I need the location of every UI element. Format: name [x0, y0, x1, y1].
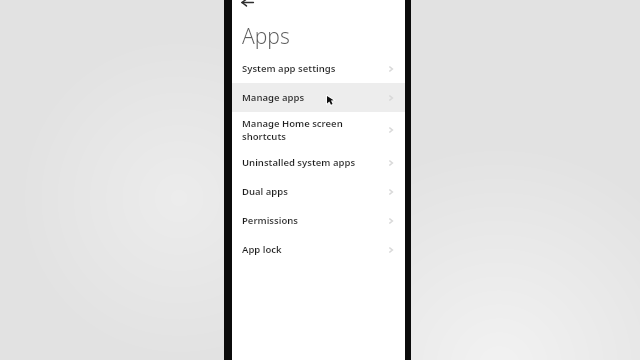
button[interactable]: Uninstalled system apps [232, 148, 405, 177]
staticText: System app settings [242, 62, 336, 75]
staticText: Dual apps [242, 185, 288, 198]
staticText: Apps [242, 22, 290, 51]
staticText: Manage Home screen [242, 117, 343, 130]
button[interactable]: Manage Home screen [232, 112, 405, 148]
button[interactable]: Dual apps [232, 177, 405, 206]
button[interactable]: System app settings [232, 54, 405, 83]
staticText: Manage apps [242, 91, 305, 104]
button[interactable]: App lock [232, 235, 405, 264]
button[interactable]: Manage apps [232, 83, 405, 112]
button[interactable]: Permissions [232, 206, 405, 235]
button[interactable]: Back [236, 0, 258, 12]
staticText: Uninstalled system apps [242, 156, 356, 169]
staticText: App lock [242, 243, 282, 256]
staticText: shortcuts [242, 130, 286, 143]
staticText: Permissions [242, 214, 298, 227]
